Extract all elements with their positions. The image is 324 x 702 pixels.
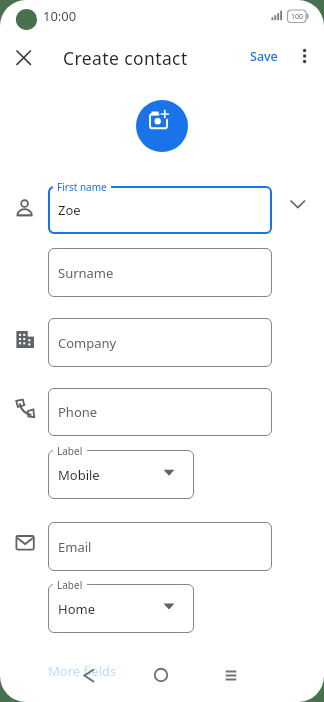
- staticText: Phone: [58, 403, 98, 421]
- staticText: Create contact: [63, 46, 188, 67]
- button[interactable]: [215, 660, 247, 692]
- staticText: Home: [58, 600, 95, 618]
- button[interactable]: Mobile: [48, 450, 194, 499]
- staticText: Email: [58, 538, 92, 556]
- button[interactable]: Email: [48, 522, 272, 571]
- button[interactable]: Surname: [48, 248, 272, 297]
- staticText: 100: [291, 12, 304, 22]
- staticText: Save: [250, 48, 278, 65]
- button[interactable]: Save: [246, 44, 282, 68]
- button[interactable]: [72, 660, 104, 692]
- staticText: Label: [57, 444, 83, 458]
- staticText: Company: [58, 334, 117, 352]
- staticText: More fields: [48, 662, 117, 680]
- button[interactable]: Phone: [48, 388, 272, 436]
- staticText: Surname: [58, 264, 114, 282]
- staticText: First name: [57, 180, 107, 194]
- button[interactable]: [48, 186, 272, 234]
- button[interactable]: [136, 100, 188, 152]
- button[interactable]: Home: [48, 584, 194, 633]
- staticText: Zoe: [58, 201, 81, 219]
- button[interactable]: [10, 43, 38, 71]
- button[interactable]: [145, 659, 177, 691]
- button[interactable]: More fields: [48, 662, 128, 680]
- staticText: Label: [57, 578, 83, 592]
- button[interactable]: Company: [48, 318, 272, 367]
- button[interactable]: [293, 45, 316, 69]
- staticText: Mobile: [58, 466, 100, 484]
- staticText: 10:00: [43, 7, 77, 23]
